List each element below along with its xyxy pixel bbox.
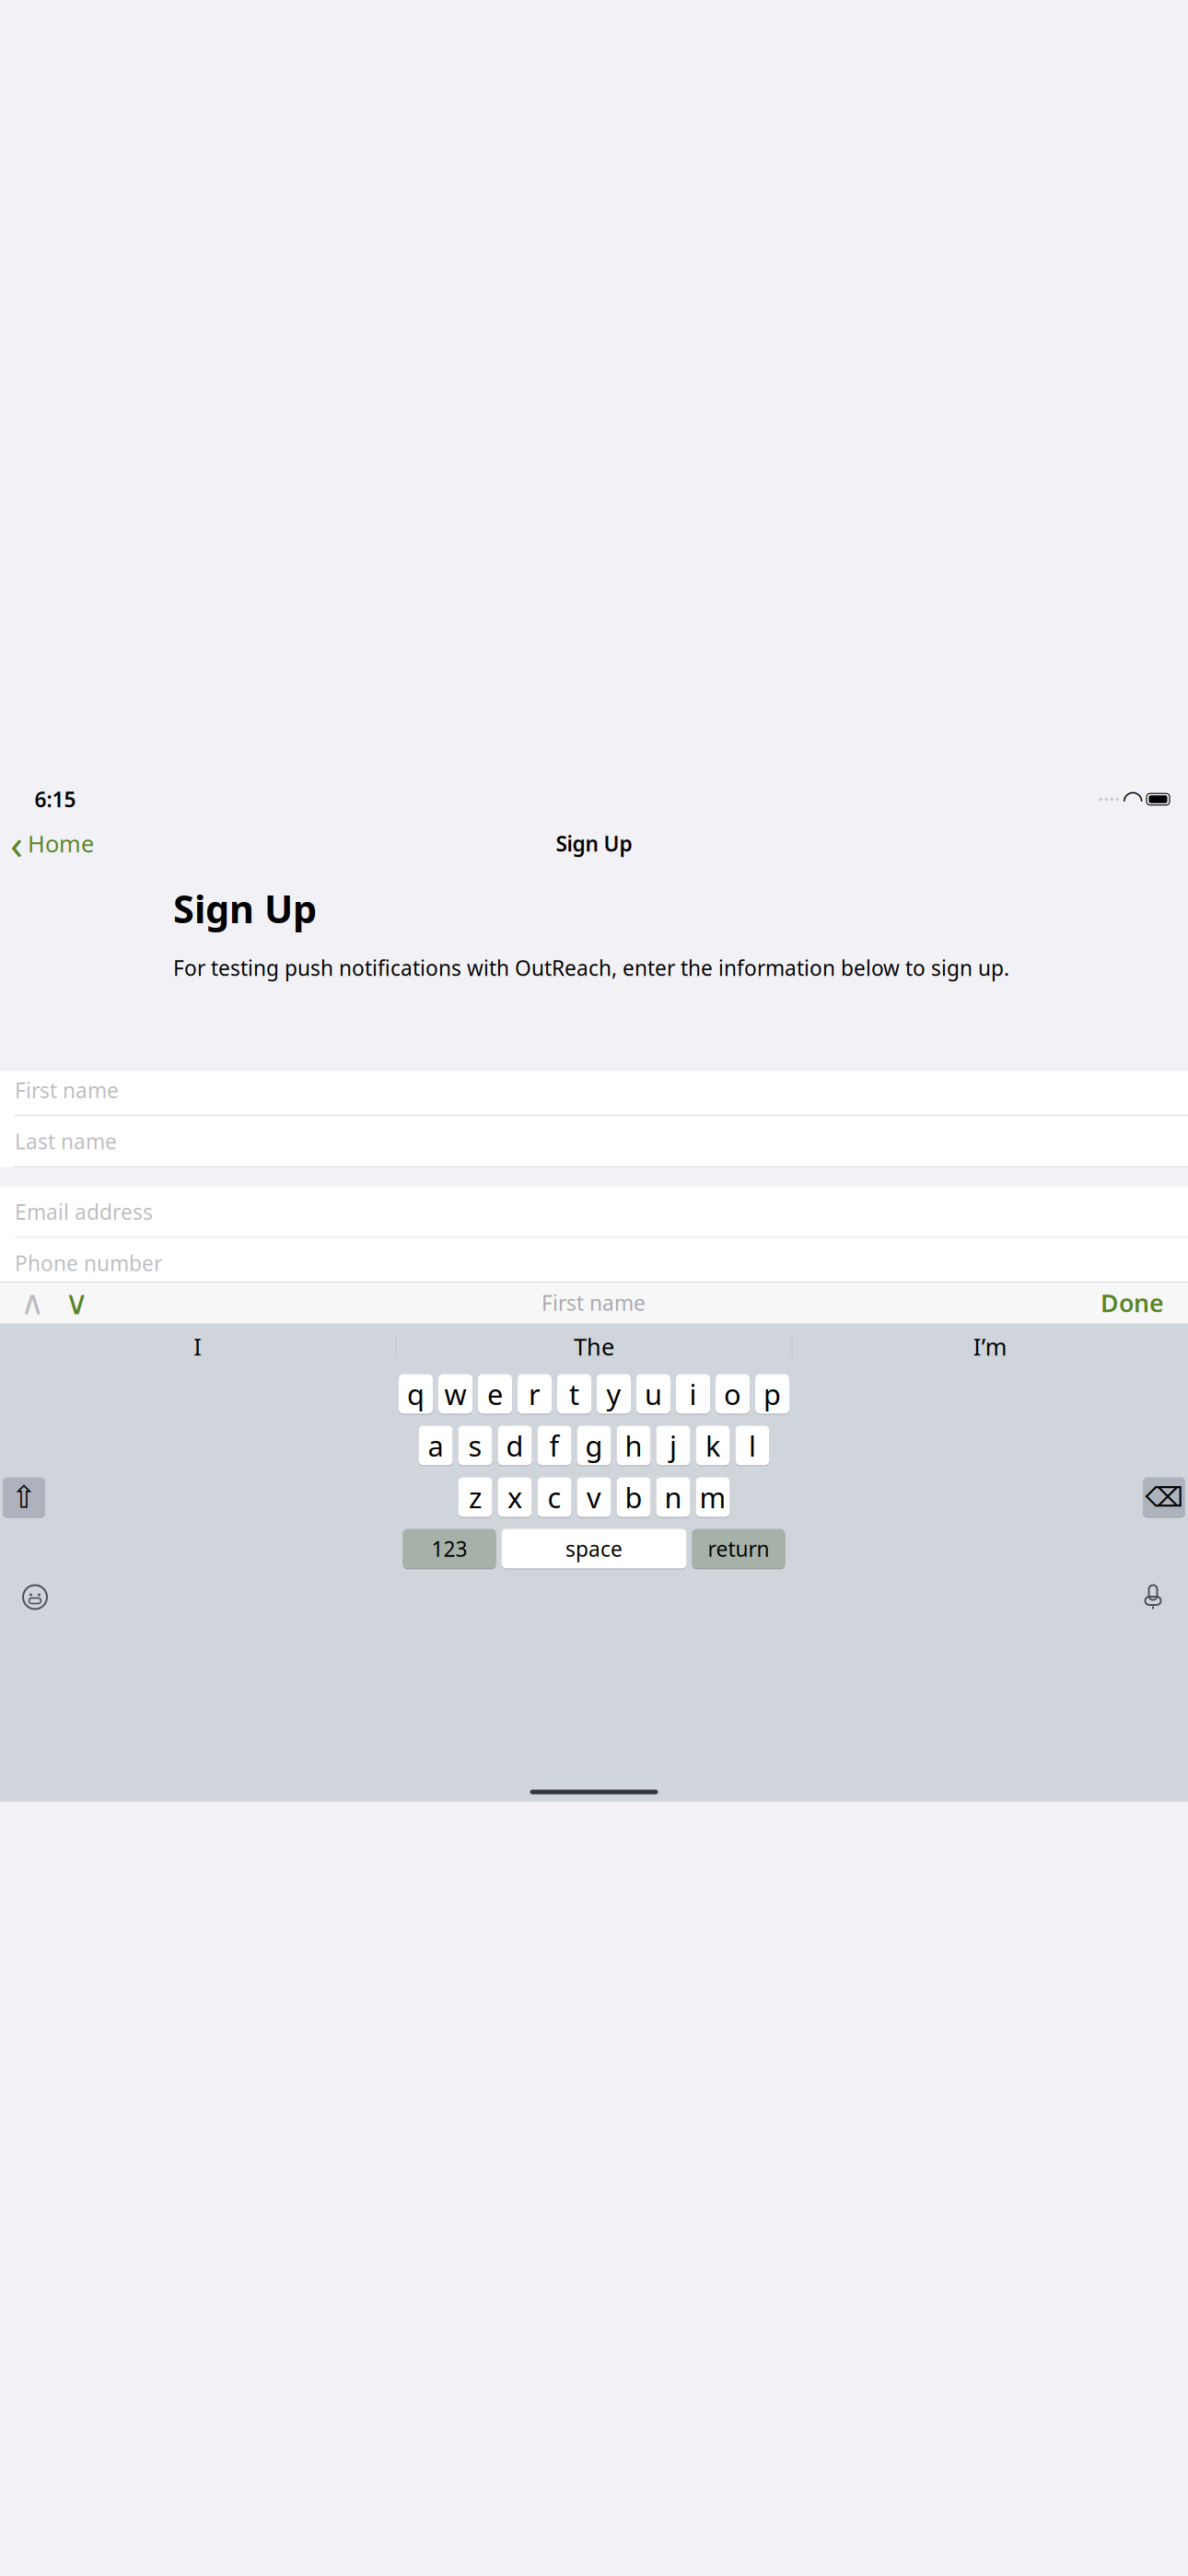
staticText: s [468, 1427, 482, 1464]
staticText: 6:15 [35, 785, 76, 813]
staticText: m [699, 1478, 726, 1516]
staticText: First name [542, 1289, 646, 1317]
button[interactable]: b [617, 1476, 651, 1518]
staticText: I [194, 1331, 202, 1362]
button[interactable]: u [636, 1373, 670, 1415]
staticText: w [444, 1375, 466, 1413]
staticText: Phone number [15, 1249, 162, 1277]
staticText: ⇧ [11, 1480, 37, 1515]
button[interactable]: Done [1095, 1282, 1170, 1323]
staticText: I’m [973, 1331, 1007, 1362]
staticText: ◠ [1122, 785, 1143, 813]
staticText: First name [15, 1076, 119, 1104]
button[interactable]: v [577, 1476, 611, 1518]
staticText: ‹ [10, 816, 23, 871]
staticText: r [529, 1375, 541, 1413]
button[interactable]: I’m [792, 1326, 1188, 1367]
button[interactable]: m [696, 1476, 730, 1518]
button[interactable]: c [537, 1476, 571, 1518]
button[interactable]: s [458, 1425, 492, 1466]
staticText: ∧ [20, 1284, 44, 1322]
staticText: i [689, 1375, 697, 1413]
staticText: For testing push notifications with OutR… [173, 954, 1009, 982]
staticText: d [506, 1427, 524, 1464]
button[interactable]: l [735, 1425, 769, 1466]
staticText: n [664, 1478, 682, 1516]
staticText: j [670, 1427, 677, 1464]
staticText: y [606, 1375, 621, 1413]
staticText: ∨ [64, 1284, 88, 1322]
button[interactable]: t [557, 1373, 591, 1415]
button[interactable]: 123 [403, 1528, 496, 1569]
button[interactable]: z [458, 1476, 492, 1518]
staticText: space [565, 1535, 623, 1563]
staticText: c [547, 1478, 561, 1516]
staticText: g [585, 1427, 603, 1464]
staticText: Last name [15, 1127, 117, 1155]
button[interactable]: Previous field [17, 1287, 48, 1318]
staticText: l [749, 1427, 756, 1464]
button[interactable]: g [577, 1425, 611, 1466]
staticText: Sign Up [173, 883, 317, 934]
button[interactable]: a [419, 1425, 453, 1466]
staticText: u [645, 1375, 662, 1413]
staticText: ⌫ [1145, 1482, 1183, 1513]
button[interactable]: n [656, 1476, 690, 1518]
staticText: p [763, 1375, 781, 1413]
button[interactable]: j [656, 1425, 690, 1466]
staticText: k [705, 1427, 720, 1464]
staticText: t [569, 1375, 579, 1413]
button[interactable]: y [597, 1373, 631, 1415]
button[interactable]: Emoji keyboard [17, 1579, 53, 1616]
staticText: e [487, 1375, 503, 1413]
staticText: b [625, 1478, 642, 1516]
button[interactable]: i [676, 1373, 710, 1415]
button[interactable]: w [438, 1373, 472, 1415]
staticText: q [407, 1375, 425, 1413]
button[interactable]: The [396, 1326, 792, 1367]
button[interactable]: ‹ [0, 823, 94, 864]
button[interactable]: h [617, 1425, 651, 1466]
button[interactable]: o [716, 1373, 750, 1415]
staticText: o [724, 1375, 741, 1413]
button[interactable]: p [755, 1373, 789, 1415]
button[interactable]: d [498, 1425, 532, 1466]
button[interactable]: Next field [61, 1287, 92, 1318]
button[interactable]: Dictation [1135, 1579, 1171, 1616]
button[interactable]: r [518, 1373, 552, 1415]
staticText: h [625, 1427, 642, 1464]
staticText: 123 [431, 1535, 467, 1563]
button[interactable]: Delete [1143, 1476, 1185, 1518]
staticText: The [574, 1331, 614, 1362]
staticText: a [428, 1427, 443, 1464]
button[interactable]: q [399, 1373, 433, 1415]
button[interactable]: x [498, 1476, 532, 1518]
staticText: v [587, 1478, 601, 1516]
staticText: Sign Up [556, 830, 632, 857]
button[interactable]: f [537, 1425, 571, 1466]
staticText: z [469, 1478, 482, 1516]
staticText: Done [1101, 1286, 1164, 1319]
staticText: Email address [15, 1198, 153, 1226]
button[interactable]: space [501, 1528, 687, 1569]
staticText: return [708, 1535, 769, 1563]
staticText: f [549, 1427, 559, 1464]
staticText: Home [28, 828, 94, 859]
button[interactable]: return [692, 1528, 785, 1569]
staticText: x [507, 1478, 522, 1516]
button[interactable]: e [478, 1373, 512, 1415]
button[interactable]: k [696, 1425, 730, 1466]
button[interactable]: Shift [3, 1476, 45, 1518]
button[interactable]: I [0, 1326, 396, 1367]
